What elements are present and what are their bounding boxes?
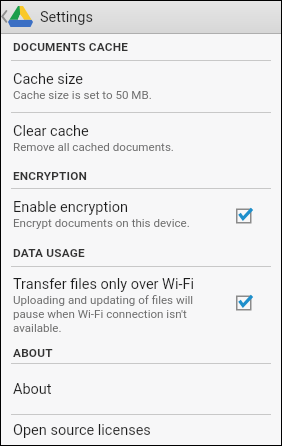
button[interactable]: Toggle setting	[236, 205, 256, 225]
staticText: Encrypt documents on this device.	[13, 216, 190, 230]
staticText: Cache size	[13, 71, 83, 88]
staticText: Uploading and updating of files will pau…	[13, 293, 201, 335]
staticText: DATA USAGE	[13, 246, 85, 260]
staticText: Cache size is set to 50 MB.	[13, 88, 152, 102]
button[interactable]: Enable encryption	[1, 189, 281, 240]
button[interactable]: Navigate up, Settings	[1, 1, 281, 34]
staticText: Enable encryption	[13, 199, 128, 216]
staticText: ABOUT	[13, 346, 53, 360]
button[interactable]: Transfer files only over Wi-Fi	[1, 267, 281, 343]
button[interactable]: Toggle setting	[236, 292, 256, 312]
staticText: ENCRYPTION	[13, 169, 88, 183]
button[interactable]: Cache size	[1, 61, 281, 112]
staticText: DOCUMENTS CACHE	[13, 40, 129, 54]
button[interactable]: About	[1, 364, 281, 414]
staticText: Transfer files only over Wi-Fi	[13, 276, 195, 293]
staticText: About	[13, 381, 52, 398]
staticText: Open source licenses	[13, 422, 151, 439]
staticText: Remove all cached documents.	[13, 140, 174, 154]
button[interactable]: Clear cache	[1, 113, 281, 164]
staticText: Clear cache	[13, 123, 89, 140]
button[interactable]: Open source licenses	[1, 415, 281, 445]
staticText: Settings	[40, 9, 93, 26]
